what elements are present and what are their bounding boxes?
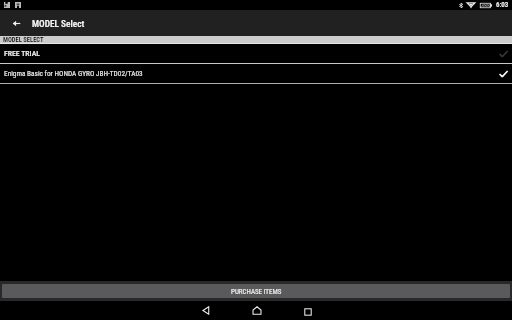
staticText: 6:03	[496, 1, 509, 9]
staticText: MODEL SELECT	[3, 36, 44, 43]
staticText: Enigma Basic for HONDA GYRO JBH-TD02/TA0…	[4, 69, 499, 78]
button[interactable]: Home	[247, 301, 266, 320]
button[interactable]: Recent apps	[298, 301, 317, 320]
button[interactable]: Enigma Basic for HONDA GYRO JBH-TD02/TA0…	[0, 64, 512, 83]
button[interactable]: FREE TRIAL	[0, 44, 512, 63]
button[interactable]: PURCHASE ITEMS	[2, 284, 510, 298]
button[interactable]: Navigate up	[0, 10, 32, 36]
staticText: PURCHASE ITEMS	[231, 288, 282, 296]
button[interactable]: Back	[196, 301, 215, 320]
staticText: FREE TRIAL	[4, 49, 499, 58]
staticText: MODEL Select	[32, 18, 85, 29]
